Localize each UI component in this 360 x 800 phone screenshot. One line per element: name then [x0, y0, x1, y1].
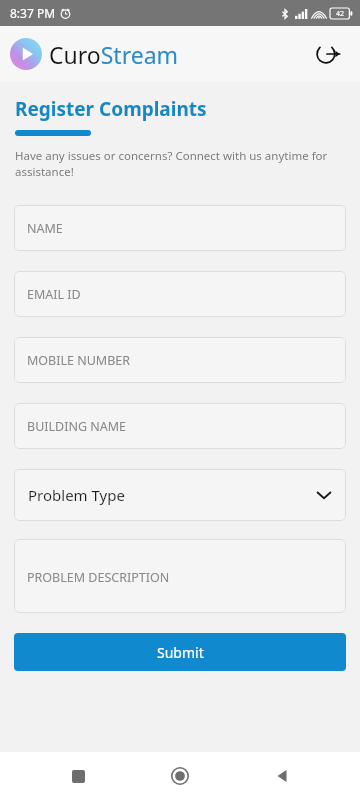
- button[interactable]: Logout: [308, 34, 348, 74]
- button[interactable]: Problem Type: [14, 469, 346, 521]
- button[interactable]: Recents: [54, 752, 102, 800]
- button[interactable]: BUILDING NAME: [14, 403, 346, 449]
- button[interactable]: PROBLEM DESCRIPTION: [14, 539, 346, 613]
- staticText: EMAIL ID: [27, 286, 81, 303]
- button[interactable]: Back: [258, 752, 306, 800]
- staticText: BUILDING NAME: [27, 418, 127, 435]
- button[interactable]: CuroStream: [10, 38, 179, 70]
- staticText: Submit: [157, 643, 204, 662]
- staticText: Have any issues or concerns? Connect wit…: [15, 148, 345, 179]
- staticText: Register Complaints: [15, 96, 207, 122]
- staticText: PROBLEM DESCRIPTION: [27, 569, 170, 586]
- button[interactable]: Home: [156, 752, 204, 800]
- staticText: MOBILE NUMBER: [27, 352, 131, 369]
- button[interactable]: NAME: [14, 205, 346, 251]
- button[interactable]: Submit: [14, 633, 346, 671]
- staticText: 42: [336, 9, 345, 19]
- staticText: CuroStream: [49, 39, 179, 70]
- staticText: 8:37 PM: [10, 5, 56, 21]
- staticText: NAME: [27, 220, 63, 237]
- button[interactable]: MOBILE NUMBER: [14, 337, 346, 383]
- staticText: Problem Type: [28, 485, 125, 505]
- button[interactable]: EMAIL ID: [14, 271, 346, 317]
